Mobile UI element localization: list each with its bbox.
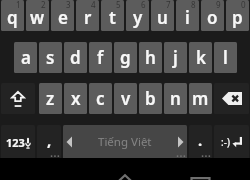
staticText: 2	[41, 0, 46, 10]
staticText: 7	[166, 0, 171, 10]
staticText: b	[145, 87, 156, 110]
staticText: .	[198, 130, 203, 150]
button[interactable]: y	[126, 0, 149, 31]
button[interactable]: g	[114, 42, 137, 73]
staticText: l	[223, 46, 228, 69]
staticText: n	[170, 87, 181, 110]
staticText: m	[192, 87, 209, 110]
button[interactable]: Space	[63, 125, 187, 159]
staticText: t	[109, 6, 116, 29]
button[interactable]: n	[164, 83, 187, 114]
button[interactable]: m	[189, 83, 212, 114]
button[interactable]: w	[26, 0, 49, 31]
staticText: g	[120, 46, 131, 69]
button[interactable]: Symbols and voice input	[1, 125, 35, 159]
staticText: ,	[47, 130, 52, 150]
staticText: q	[7, 6, 18, 29]
staticText: f	[97, 46, 104, 69]
staticText: 3	[66, 0, 71, 10]
staticText: c	[96, 87, 105, 110]
staticText: 1	[16, 0, 21, 10]
button[interactable]: i	[176, 0, 199, 31]
button[interactable]: Hide keyboard	[111, 173, 139, 180]
staticText: r	[84, 6, 92, 29]
staticText: h	[145, 46, 156, 69]
staticText: s	[46, 46, 55, 69]
button[interactable]: Comma	[37, 125, 61, 159]
staticText: 9	[216, 0, 221, 10]
staticText: w	[30, 6, 45, 29]
staticText: 6	[141, 0, 146, 10]
staticText: j	[173, 46, 178, 69]
staticText: p	[232, 6, 243, 29]
staticText: a	[21, 46, 31, 69]
button[interactable]: e	[51, 0, 74, 31]
button[interactable]: v	[114, 83, 137, 114]
staticText: i	[185, 6, 190, 29]
staticText: k	[196, 46, 206, 69]
button[interactable]: o	[201, 0, 224, 31]
staticText: x	[71, 87, 81, 110]
staticText: 0	[241, 0, 246, 10]
staticText: v	[121, 87, 131, 110]
button[interactable]: b	[139, 83, 162, 114]
button[interactable]: q	[1, 0, 24, 31]
button[interactable]: r	[76, 0, 99, 31]
staticText: o	[207, 6, 218, 29]
button[interactable]: Backspace	[214, 83, 249, 114]
button[interactable]: s	[39, 42, 62, 73]
staticText: :-)	[221, 135, 230, 149]
button[interactable]: j	[164, 42, 187, 73]
staticText: 123	[6, 135, 25, 150]
button[interactable]: z	[39, 83, 62, 114]
staticText: 5	[116, 0, 121, 10]
button[interactable]: k	[189, 42, 212, 73]
staticText: u	[157, 6, 168, 29]
button[interactable]: p	[226, 0, 249, 31]
button[interactable]: Shift	[1, 83, 35, 114]
button[interactable]: d	[64, 42, 87, 73]
staticText: 8	[191, 0, 196, 10]
button[interactable]: Period	[189, 125, 212, 159]
staticText: d	[70, 46, 81, 69]
button[interactable]: x	[64, 83, 87, 114]
button[interactable]: f	[89, 42, 112, 73]
button[interactable]: Recent apps	[190, 177, 211, 180]
button[interactable]: t	[101, 0, 124, 31]
button[interactable]: c	[89, 83, 112, 114]
staticText: z	[46, 87, 55, 110]
staticText: Tiếng Việt	[98, 134, 152, 150]
button[interactable]: l	[214, 42, 237, 73]
button[interactable]: h	[139, 42, 162, 73]
button[interactable]: Enter	[214, 125, 249, 159]
staticText: y	[133, 6, 143, 29]
staticText: 4	[91, 0, 96, 10]
button[interactable]: a	[14, 42, 37, 73]
button[interactable]: u	[151, 0, 174, 31]
staticText: e	[58, 6, 68, 29]
